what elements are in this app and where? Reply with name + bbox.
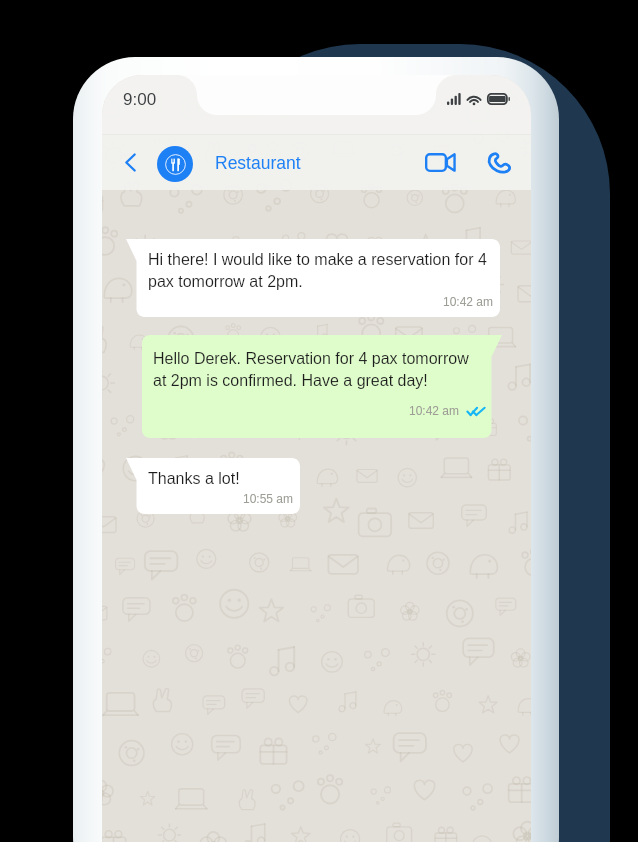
button[interactable]: Video call xyxy=(415,143,465,181)
staticText: 10:42 am xyxy=(443,295,494,309)
staticText: Thanks a lot! xyxy=(148,467,240,489)
staticText: Hello Derek. Reservation for 4 pax tomor… xyxy=(153,347,485,391)
button[interactable]: Thanks a lot! xyxy=(126,458,300,514)
staticText: 10:55 am xyxy=(243,492,294,506)
button[interactable]: Hi there! I would like to make a reserva… xyxy=(126,239,500,317)
staticText: Restaurant xyxy=(215,151,301,174)
staticText: 9:00 xyxy=(123,90,157,109)
button[interactable]: Voice call xyxy=(476,142,521,182)
button[interactable]: Back xyxy=(118,149,142,175)
button[interactable]: Restaurant profile xyxy=(157,146,193,182)
staticText: 10:42 am xyxy=(409,404,460,418)
button[interactable]: Hello Derek. Reservation for 4 pax tomor… xyxy=(142,335,502,438)
staticText: Hi there! I would like to make a reserva… xyxy=(148,248,494,292)
